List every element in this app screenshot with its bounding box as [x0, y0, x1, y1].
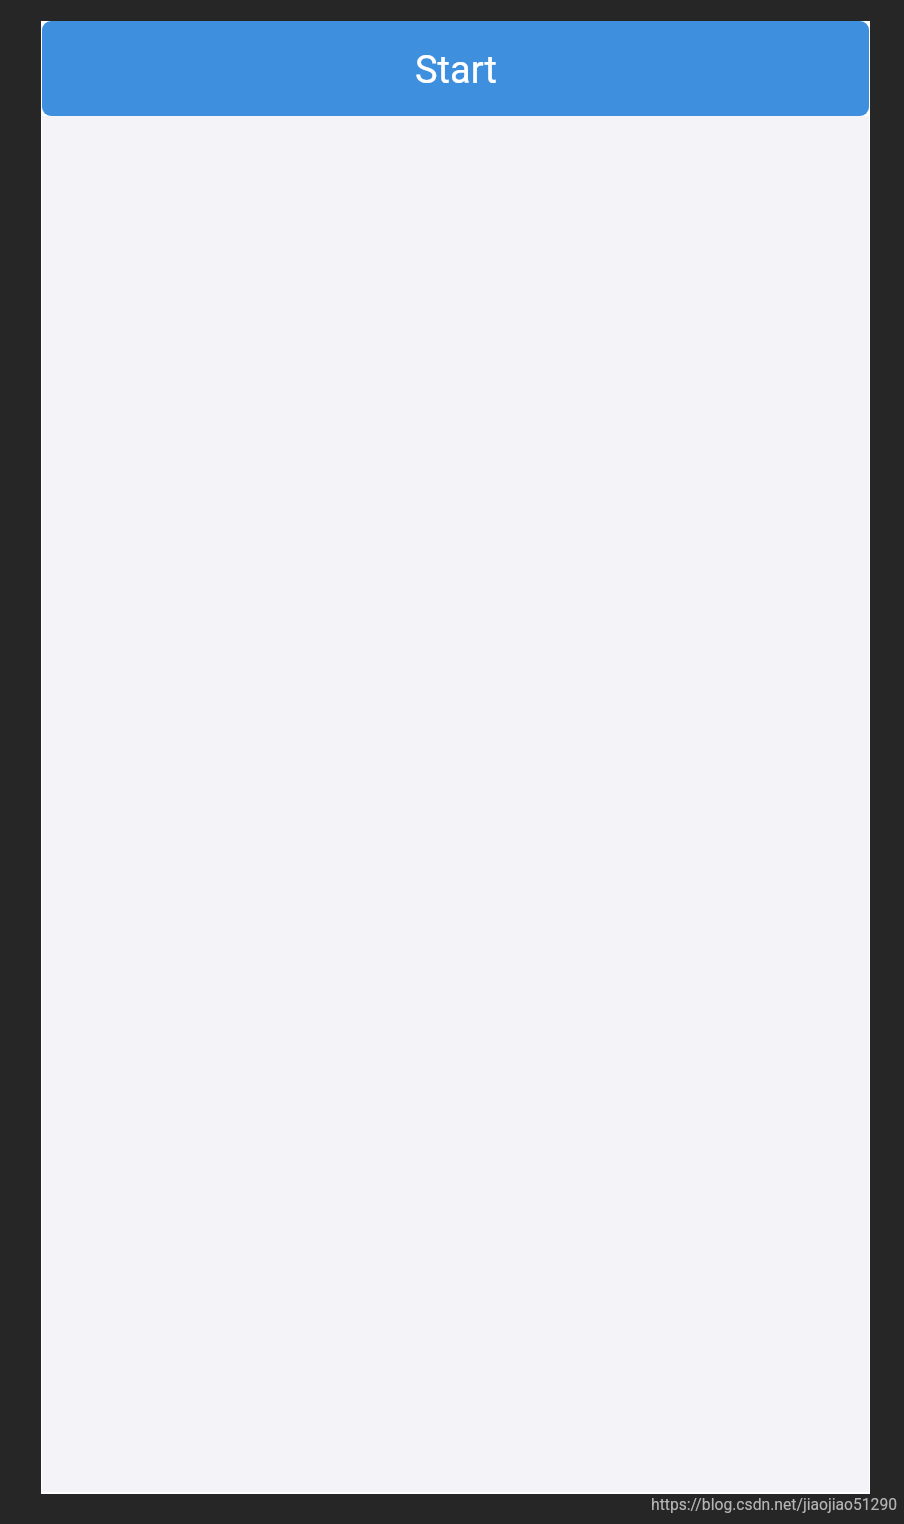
button[interactable]: Start — [42, 21, 869, 116]
staticText: https://blog.csdn.net/jiaojiao51290 — [651, 1495, 898, 1513]
staticText: Start — [415, 48, 497, 93]
